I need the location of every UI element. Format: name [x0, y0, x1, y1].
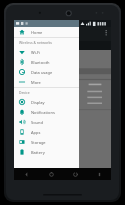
staticText: Storage — [31, 140, 46, 145]
button[interactable]: Data usage — [14, 67, 79, 77]
button[interactable]: Home — [14, 27, 79, 37]
staticText: Data usage — [31, 70, 53, 75]
button[interactable]: More — [14, 77, 79, 87]
button[interactable]: Wi-Fi — [14, 47, 79, 57]
button[interactable]: Display — [14, 97, 79, 107]
staticText: More — [31, 80, 41, 85]
button[interactable]: Bluetooth — [14, 57, 79, 67]
staticText: Apps — [31, 130, 41, 135]
button[interactable]: Battery — [14, 147, 79, 157]
button[interactable]: Home — [39, 168, 63, 180]
staticText: Notifications — [31, 110, 55, 115]
staticText: Battery — [31, 150, 45, 155]
staticText: Display — [31, 100, 45, 105]
button[interactable]: Back — [14, 168, 39, 180]
staticText: Sound — [31, 120, 44, 125]
staticText: Wi-Fi — [31, 50, 41, 55]
button[interactable]: Menu — [87, 168, 111, 180]
staticText: Device — [19, 90, 30, 95]
staticText: Bluetooth — [31, 60, 50, 65]
button[interactable]: Recents — [63, 168, 87, 180]
button[interactable]: Notifications — [14, 107, 79, 117]
staticText: Wireless & networks — [19, 40, 52, 45]
button[interactable]: Storage — [14, 137, 79, 147]
button[interactable]: Sound — [14, 117, 79, 127]
button[interactable]: Apps — [14, 127, 79, 137]
button[interactable]: More options — [102, 27, 111, 41]
staticText: Home — [31, 30, 43, 35]
